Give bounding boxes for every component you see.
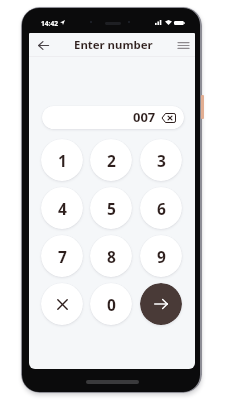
staticText: 4: [58, 198, 67, 219]
staticText: 0: [107, 294, 116, 315]
staticText: 6: [157, 198, 166, 219]
staticText: 1: [58, 150, 67, 171]
staticText: 14:42: [41, 19, 58, 28]
staticText: 5: [107, 198, 116, 219]
button[interactable]: 7: [41, 235, 83, 277]
button[interactable]: 8: [90, 235, 132, 277]
staticText: 007: [133, 108, 156, 126]
button[interactable]: 6: [140, 187, 182, 229]
button[interactable]: 0: [90, 283, 132, 325]
staticText: 3: [157, 150, 166, 171]
staticText: 2: [107, 150, 116, 171]
staticText: 9: [157, 246, 166, 267]
button[interactable]: Clear: [41, 283, 83, 325]
button[interactable]: Back: [32, 33, 54, 57]
button[interactable]: 3: [140, 139, 182, 181]
button[interactable]: Continue: [140, 283, 182, 325]
staticText: 8: [107, 246, 116, 267]
staticText: Enter number: [74, 37, 153, 53]
button[interactable]: 5: [90, 187, 132, 229]
button[interactable]: 9: [140, 235, 182, 277]
button[interactable]: 4: [41, 187, 83, 229]
staticText: 7: [58, 246, 67, 267]
button[interactable]: 1: [41, 139, 83, 181]
button[interactable]: 007: [42, 106, 184, 129]
button[interactable]: Menu: [172, 33, 194, 57]
button[interactable]: Backspace: [161, 112, 176, 123]
button[interactable]: 2: [90, 139, 132, 181]
